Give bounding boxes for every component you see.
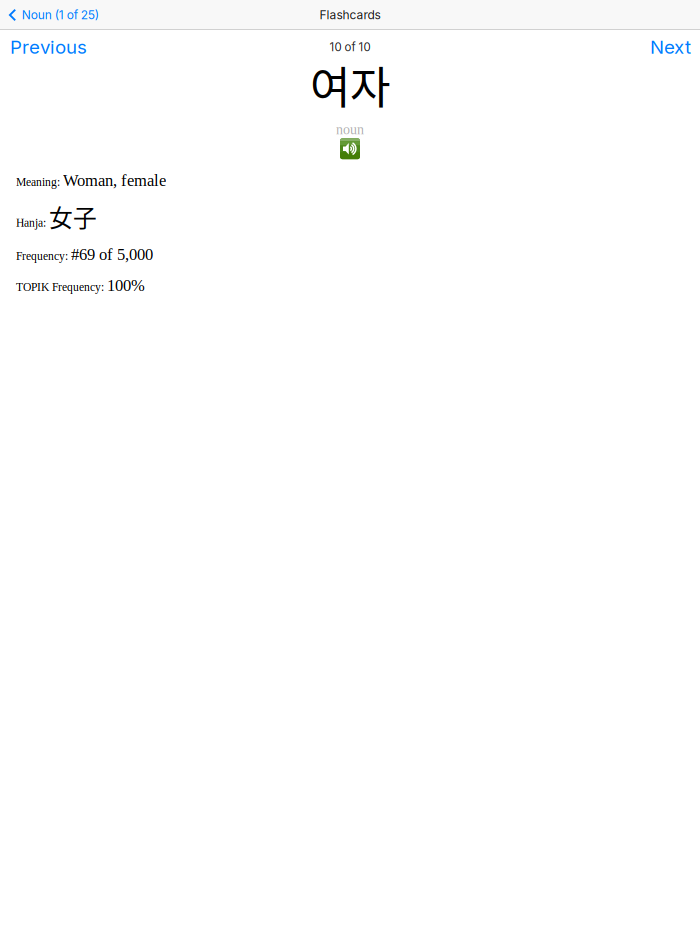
staticText: Noun (1 of 25) xyxy=(22,8,99,22)
staticText: 여자 xyxy=(310,53,390,117)
staticText: 10 of 10 xyxy=(329,40,370,54)
staticText: 女子 xyxy=(49,199,97,234)
staticText: 100% xyxy=(107,276,145,294)
staticText: Woman, female xyxy=(63,171,166,189)
button[interactable]: Next xyxy=(640,34,700,60)
staticText: Frequency: xyxy=(16,250,68,262)
button[interactable]: Play pronunciation xyxy=(340,138,360,159)
staticText: Meaning: xyxy=(16,176,60,188)
staticText: Hanja: xyxy=(16,216,46,229)
staticText: noun xyxy=(336,122,364,137)
staticText: Flashcards xyxy=(319,8,380,22)
staticText: TOPIK Frequency: xyxy=(16,281,104,293)
staticText: Next xyxy=(650,36,691,58)
button[interactable]: Previous xyxy=(0,34,97,60)
button[interactable]: Noun (1 of 25) xyxy=(0,0,107,30)
staticText: #69 of 5,000 xyxy=(71,245,153,263)
staticText: Previous xyxy=(10,36,87,58)
